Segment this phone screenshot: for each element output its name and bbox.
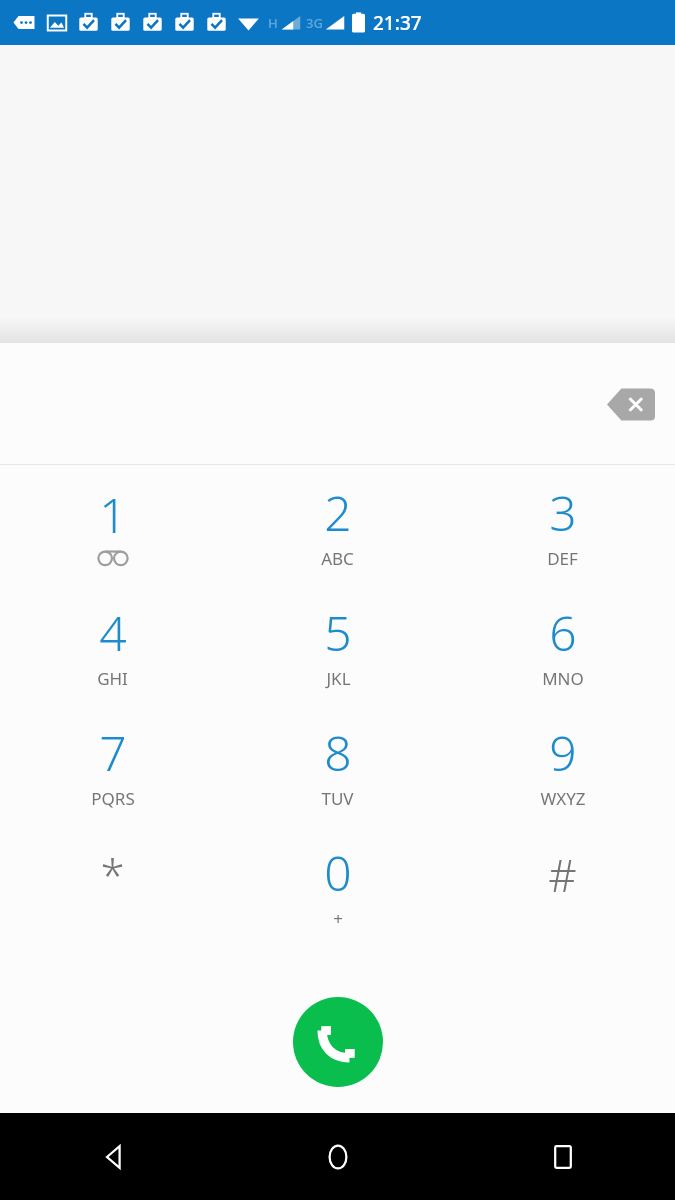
staticText: 21:37 <box>373 10 422 36</box>
staticText: MNO <box>542 667 584 690</box>
button[interactable]: 9 <box>450 705 675 825</box>
staticText: 5 <box>324 600 352 665</box>
staticText: DEF <box>547 547 578 570</box>
staticText: JKL <box>326 667 351 690</box>
staticText: WXYZ <box>540 787 586 810</box>
button[interactable]: Backspace <box>603 379 659 429</box>
staticText: 8 <box>324 720 352 785</box>
staticText: 4 <box>99 600 127 665</box>
staticText: * <box>100 845 125 905</box>
button[interactable]: 3 <box>450 465 675 585</box>
staticText: 1 <box>99 482 127 547</box>
staticText: TUV <box>321 787 354 810</box>
staticText: PQRS <box>91 787 135 810</box>
staticText: 3G <box>306 14 323 32</box>
button[interactable]: Call <box>293 997 383 1087</box>
button[interactable]: 1 <box>0 465 225 585</box>
staticText: + <box>333 907 343 930</box>
staticText: 6 <box>549 600 577 665</box>
button[interactable]: 2 <box>225 465 450 585</box>
staticText: ABC <box>321 547 354 570</box>
staticText: 9 <box>549 720 577 785</box>
button[interactable]: 0 <box>225 825 450 945</box>
staticText: 2 <box>324 480 352 545</box>
staticText: 0 <box>324 840 352 905</box>
button[interactable]: 6 <box>450 585 675 705</box>
button[interactable]: Back <box>0 1113 225 1200</box>
button[interactable]: 8 <box>225 705 450 825</box>
staticText: H <box>268 14 278 32</box>
button[interactable]: 4 <box>0 585 225 705</box>
staticText: 7 <box>99 720 127 785</box>
staticText: # <box>548 845 577 905</box>
button[interactable]: Recents <box>450 1113 675 1200</box>
staticText: 3 <box>549 480 577 545</box>
button[interactable]: * <box>0 825 225 945</box>
staticText: GHI <box>97 667 128 690</box>
button[interactable]: # <box>450 825 675 945</box>
button[interactable]: 7 <box>0 705 225 825</box>
button[interactable]: Home <box>225 1113 450 1200</box>
button[interactable]: 5 <box>225 585 450 705</box>
